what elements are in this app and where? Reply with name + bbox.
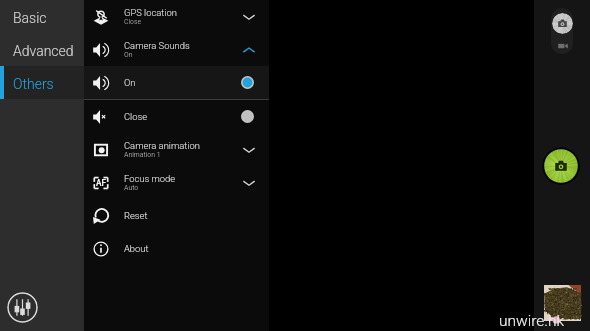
staticText: Camera Sounds (124, 40, 190, 51)
button[interactable]: Photo mode (552, 13, 573, 34)
staticText: Others (13, 76, 54, 92)
button[interactable]: Close (84, 100, 269, 133)
staticText: Advanced (13, 43, 74, 59)
button[interactable]: Last photo (544, 285, 581, 321)
staticText: Close (124, 18, 142, 26)
staticText: Close (124, 111, 148, 122)
button[interactable]: Camera animation (84, 133, 269, 166)
button[interactable]: Video mode (552, 35, 573, 56)
staticText: unwire.hk (499, 312, 565, 330)
button[interactable]: About (84, 232, 269, 265)
staticText: On (124, 51, 133, 59)
staticText: AF (96, 178, 106, 188)
button[interactable]: Shutter (542, 147, 580, 185)
button[interactable]: Advanced (0, 33, 84, 66)
staticText: Basic (13, 10, 47, 26)
button[interactable]: Reset (84, 199, 269, 232)
button[interactable]: Basic (0, 0, 84, 33)
staticText: About (124, 243, 149, 254)
staticText: Auto (124, 184, 139, 192)
staticText: Focus mode (124, 173, 176, 184)
staticText: GPS location (124, 7, 177, 18)
staticText: On (124, 77, 136, 88)
staticText: Animation 1 (124, 151, 161, 159)
button[interactable]: AF (84, 166, 269, 199)
button[interactable]: Manual controls (7, 292, 38, 323)
button[interactable]: On (84, 66, 269, 99)
button[interactable]: Camera Sounds (84, 33, 269, 66)
staticText: Reset (124, 210, 148, 221)
button[interactable]: Others (0, 66, 84, 99)
staticText: Camera animation (124, 140, 200, 151)
button[interactable]: GPS location (84, 0, 269, 33)
